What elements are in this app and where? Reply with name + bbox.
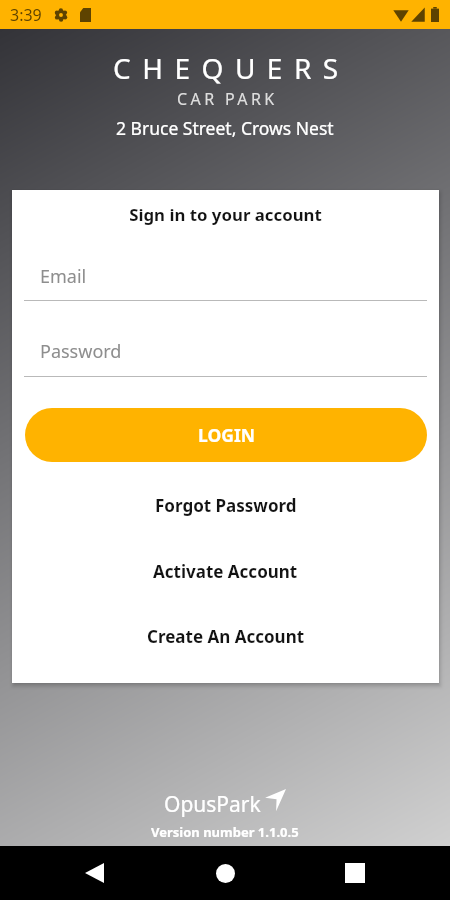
button[interactable]: Back — [68, 846, 120, 900]
button[interactable]: Recent apps — [329, 846, 381, 900]
button[interactable]: Password — [24, 327, 427, 377]
staticText: Create An Account — [147, 625, 305, 648]
staticText: Activate Account — [153, 560, 298, 583]
staticText: Version number 1.1.0.5 — [151, 823, 299, 841]
staticText: CAR PARK — [177, 88, 278, 110]
staticText: Password — [40, 339, 122, 364]
button[interactable]: LOGIN — [25, 408, 427, 462]
staticText: 3:39 — [10, 4, 42, 26]
staticText: CHEQUERS — [113, 49, 350, 87]
button[interactable]: Activate Account — [12, 549, 439, 593]
staticText: OpusPark — [164, 790, 261, 819]
staticText: Sign in to your account — [12, 203, 439, 226]
button[interactable]: Email — [24, 252, 427, 301]
staticText: Email — [40, 264, 87, 289]
button[interactable]: Forgot Password — [12, 483, 439, 527]
staticText: Forgot Password — [155, 494, 297, 517]
staticText: LOGIN — [198, 423, 255, 447]
staticText: 2 Bruce Street, Crows Nest — [116, 116, 334, 140]
button[interactable]: Home — [199, 846, 251, 900]
button[interactable]: Create An Account — [12, 614, 439, 658]
